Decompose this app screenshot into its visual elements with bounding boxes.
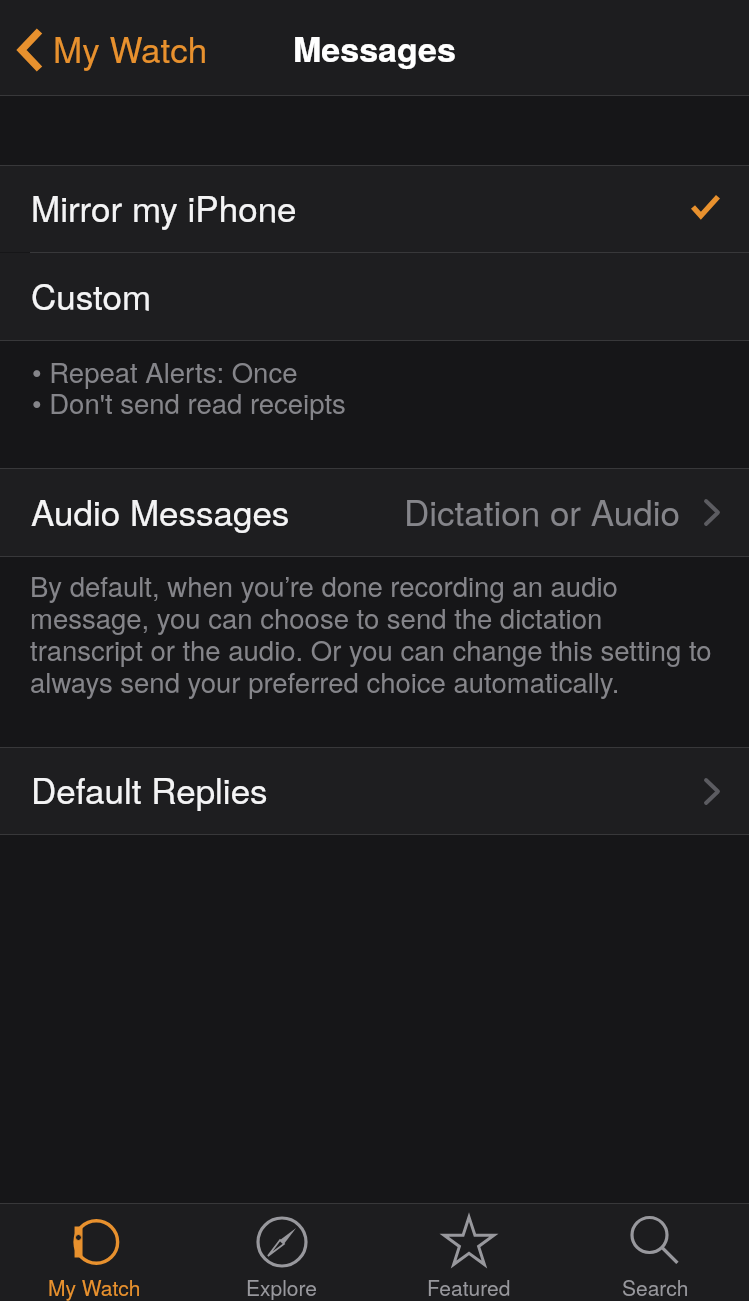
button[interactable]: Default Replies — [0, 748, 749, 834]
staticText: Messages — [293, 24, 456, 73]
button[interactable]: Custom — [0, 253, 749, 340]
button[interactable]: My Watch — [0, 1204, 188, 1301]
button[interactable]: Featured — [375, 1204, 562, 1301]
staticText: Mirror my iPhone — [31, 182, 297, 232]
button[interactable]: Back to My Watch — [0, 0, 216, 96]
button[interactable]: Explore — [188, 1204, 375, 1301]
staticText: My Watch — [48, 1272, 141, 1301]
button[interactable]: Audio Messages — [0, 469, 749, 556]
other: Selected — [691, 194, 720, 220]
staticText: My Watch — [53, 23, 208, 73]
staticText: Explore — [246, 1272, 317, 1301]
button[interactable]: Search — [562, 1204, 749, 1301]
button[interactable]: Mirror my iPhone — [0, 166, 749, 252]
staticText: Featured — [427, 1272, 511, 1301]
staticText: • Repeat Alerts: Once • Don't send read … — [32, 351, 346, 422]
staticText: Audio Messages — [31, 486, 290, 536]
staticText: Custom — [31, 270, 152, 320]
staticText: Default Replies — [31, 764, 268, 814]
staticText: Search — [622, 1272, 689, 1301]
staticText: Dictation or Audio — [404, 486, 680, 536]
staticText: By default, when you’re done recording a… — [30, 565, 714, 700]
